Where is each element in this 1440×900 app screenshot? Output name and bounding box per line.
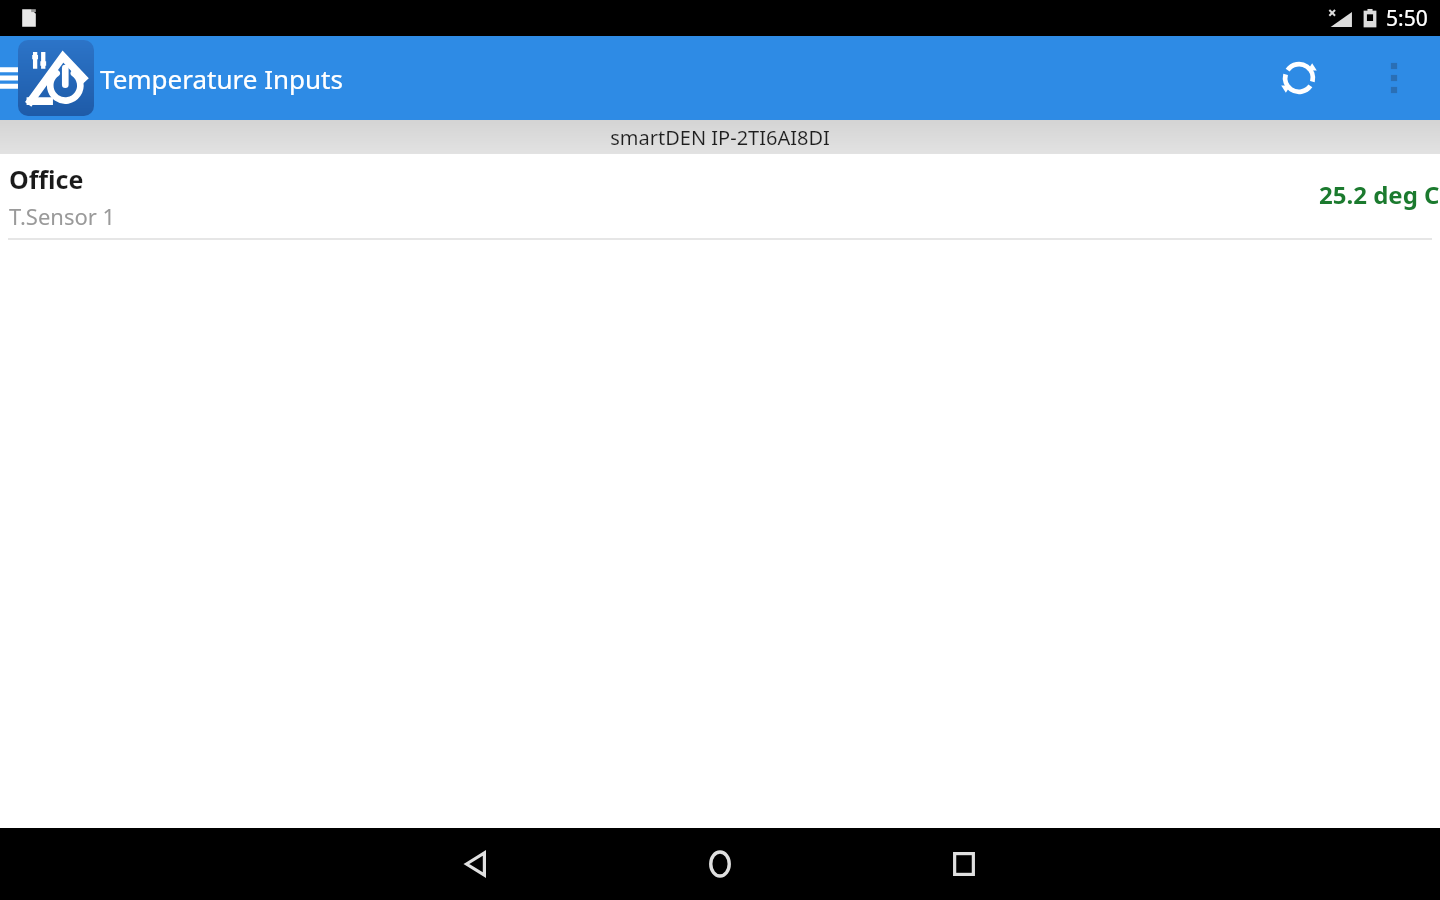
button[interactable]: Home	[684, 828, 756, 900]
staticText: T.Sensor 1	[9, 201, 116, 231]
button[interactable]: Office	[0, 154, 1440, 240]
button[interactable]: Recent apps	[928, 828, 1000, 900]
button[interactable]: Back	[440, 828, 512, 900]
button[interactable]: More options	[1370, 47, 1418, 109]
staticText: smartDEN IP-2TI6AI8DI	[610, 124, 830, 151]
staticText: 25.2 deg C	[1319, 178, 1440, 211]
button[interactable]: Refresh	[1268, 47, 1330, 109]
staticText: Office	[9, 162, 84, 196]
staticText: Temperature Inputs	[100, 61, 343, 96]
button[interactable]: Open navigation drawer	[0, 53, 22, 103]
staticText: 5:50	[1386, 4, 1428, 33]
